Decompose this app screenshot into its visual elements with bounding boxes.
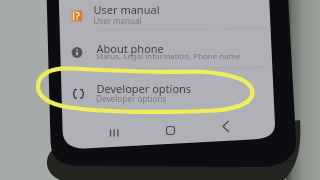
button[interactable] bbox=[0, 0, 320, 180]
